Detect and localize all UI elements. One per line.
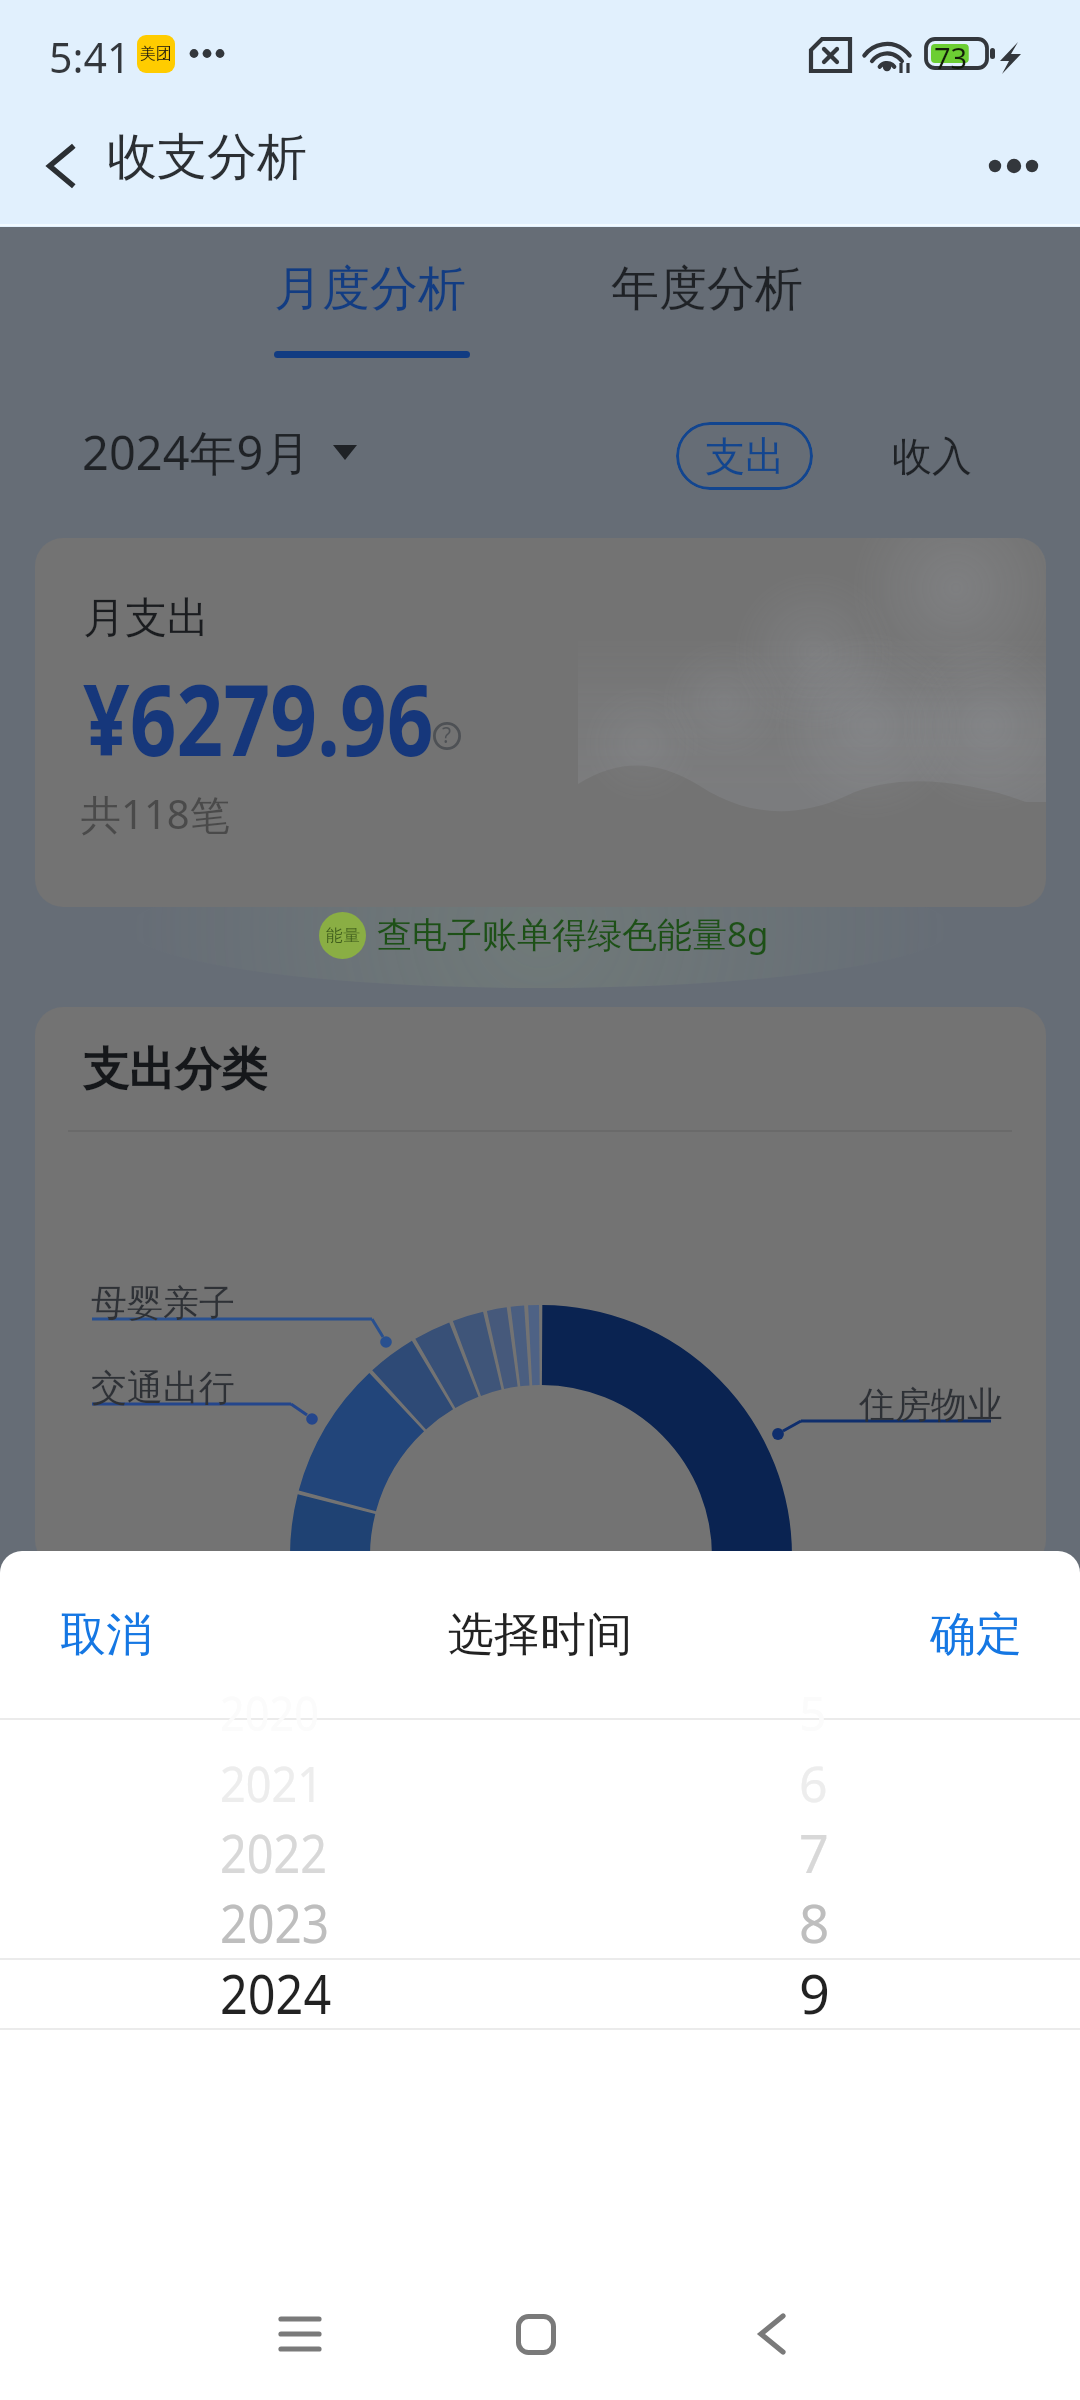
staticText: 取消 <box>60 1606 152 1664</box>
staticText: 交通出行 <box>91 1365 235 1410</box>
staticText: 5:41 <box>49 29 131 85</box>
staticText: 确定 <box>930 1606 1022 1664</box>
staticText: 查电子账单得绿色能量8g <box>377 910 769 958</box>
button[interactable]: 取消 <box>30 1551 246 1718</box>
staticText: ? <box>442 721 452 749</box>
staticText: 月支出 <box>83 592 209 645</box>
staticText: 6 <box>799 1749 828 1817</box>
staticText: 2020 <box>220 1680 319 1745</box>
staticText: 选择时间 <box>448 1606 632 1664</box>
staticText: 73 <box>934 38 968 77</box>
button[interactable]: 能量 <box>319 911 769 959</box>
button[interactable]: 年度分析 <box>611 259 803 319</box>
staticText: ¥6279.96 <box>83 651 434 784</box>
staticText: 收入 <box>892 431 972 481</box>
staticText: 2024 <box>220 1956 332 2030</box>
staticText: 收支分析 <box>107 126 307 189</box>
staticText: 7 <box>799 1817 829 1888</box>
button[interactable]: More options <box>968 118 1064 214</box>
staticText: 美团 <box>140 44 172 64</box>
button[interactable]: Home <box>476 2274 596 2394</box>
button[interactable]: Back <box>712 2274 832 2394</box>
button[interactable]: 2024年9月 <box>82 420 357 484</box>
button[interactable]: 收入 <box>878 423 986 489</box>
staticText: 2023 <box>220 1886 330 1958</box>
staticText: 共118笔 <box>81 786 230 841</box>
button[interactable]: 月支出 <box>35 538 1046 907</box>
staticText: 9 <box>799 1956 830 2030</box>
staticText: 住房物业 <box>859 1382 1003 1427</box>
staticText: 8 <box>799 1886 830 1958</box>
staticText: 5 <box>799 1680 827 1745</box>
staticText: 2022 <box>220 1817 327 1888</box>
staticText: 支出 <box>705 431 785 481</box>
button[interactable]: 月度分析 <box>274 259 466 319</box>
staticText: 2024年9月 <box>82 420 311 484</box>
staticText: 支出分类 <box>83 1041 267 1099</box>
button[interactable]: Help <box>433 722 461 750</box>
button[interactable]: 确定 <box>860 1551 1080 1718</box>
button[interactable]: Back <box>14 118 110 214</box>
staticText: 母婴亲子 <box>91 1280 235 1325</box>
staticText: 能量 <box>326 925 360 946</box>
button[interactable]: 支出 <box>676 422 813 490</box>
staticText: 2021 <box>220 1749 323 1817</box>
button[interactable]: Recent apps <box>240 2274 360 2394</box>
